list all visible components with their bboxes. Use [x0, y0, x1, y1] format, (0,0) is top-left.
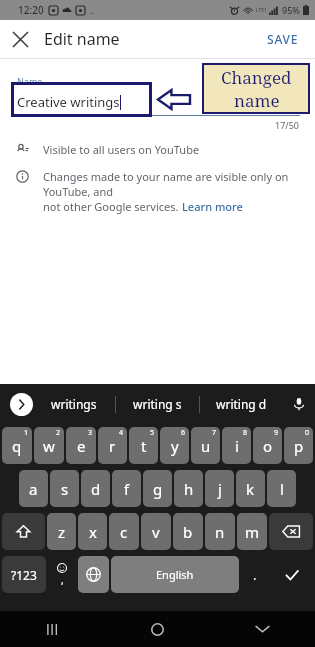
- staticText: 5: [150, 428, 155, 438]
- staticText: b: [183, 522, 193, 542]
- button[interactable]: x: [78, 513, 107, 550]
- staticText: writings: [51, 396, 97, 412]
- staticText: Edit name: [44, 28, 120, 50]
- staticText: j: [218, 479, 222, 499]
- button[interactable]: o: [253, 427, 282, 464]
- button[interactable]: Learn more: [182, 199, 243, 214]
- button[interactable]: m: [237, 513, 267, 550]
- button[interactable]: writing d: [200, 384, 283, 424]
- staticText: writing d: [216, 396, 267, 412]
- staticText: p: [294, 436, 304, 456]
- button[interactable]: w: [34, 427, 64, 464]
- button[interactable]: ?123: [2, 556, 46, 593]
- button[interactable]: Shift: [2, 513, 45, 550]
- button[interactable]: y: [160, 427, 189, 464]
- staticText: 0: [305, 428, 310, 438]
- staticText: 17/50: [0, 119, 299, 131]
- button[interactable]: More suggestions: [10, 393, 33, 416]
- button[interactable]: Creative writings: [0, 91, 315, 113]
- button[interactable]: l: [267, 470, 296, 507]
- button[interactable]: Recent apps: [0, 611, 105, 647]
- staticText: ,: [61, 573, 64, 587]
- staticText: f: [124, 479, 130, 499]
- staticText: 2: [56, 428, 61, 438]
- button[interactable]: Voice input: [283, 384, 315, 424]
- button[interactable]: j: [205, 470, 234, 507]
- staticText: 95%: [282, 4, 300, 16]
- button[interactable]: Hide keyboard: [210, 611, 315, 647]
- staticText: y: [171, 436, 179, 456]
- button[interactable]: writings: [33, 384, 115, 424]
- button[interactable]: Change language: [78, 556, 109, 593]
- staticText: 7: [212, 428, 217, 438]
- staticText: s: [61, 479, 69, 499]
- staticText: Creative writings: [17, 93, 120, 111]
- staticText: c: [120, 522, 128, 542]
- button[interactable]: b: [173, 513, 203, 550]
- staticText: o: [263, 436, 273, 456]
- staticText: z: [58, 522, 66, 542]
- staticText: m: [245, 522, 260, 542]
- staticText: English: [156, 567, 194, 582]
- button[interactable]: c: [109, 513, 139, 550]
- staticText: SAVE: [267, 31, 299, 47]
- staticText: .: [253, 566, 257, 584]
- staticText: d: [91, 479, 101, 499]
- button[interactable]: t: [129, 427, 158, 464]
- button[interactable]: d: [81, 470, 110, 507]
- button[interactable]: r: [98, 427, 127, 464]
- button[interactable]: g: [143, 470, 172, 507]
- button[interactable]: z: [47, 513, 76, 550]
- button[interactable]: .: [241, 556, 269, 593]
- button[interactable]: SAVE: [251, 23, 315, 55]
- staticText: i: [235, 436, 239, 456]
- button[interactable]: Emoji: [48, 556, 76, 593]
- button[interactable]: writing s: [116, 384, 199, 424]
- staticText: LTE1: [256, 7, 267, 14]
- button[interactable]: u: [191, 427, 220, 464]
- staticText: 4: [119, 428, 124, 438]
- button[interactable]: q: [2, 427, 32, 464]
- staticText: q: [12, 436, 22, 456]
- staticText: 9: [274, 428, 279, 438]
- staticText: 12:20: [18, 3, 44, 17]
- staticText: 8: [243, 428, 248, 438]
- staticText: name: [234, 89, 280, 112]
- button[interactable]: Backspace: [269, 513, 313, 550]
- staticText: writing s: [133, 396, 182, 412]
- staticText: ..: [90, 4, 95, 16]
- button[interactable]: Enter: [271, 556, 313, 593]
- button[interactable]: Close: [0, 20, 40, 58]
- button[interactable]: Home: [105, 611, 210, 647]
- staticText: v: [152, 522, 160, 542]
- button[interactable]: s: [50, 470, 79, 507]
- button[interactable]: a: [19, 470, 48, 507]
- staticText: h: [184, 479, 194, 499]
- staticText: Learn more: [182, 199, 243, 214]
- button[interactable]: Visible to all users on YouTube: [0, 142, 315, 157]
- button[interactable]: k: [236, 470, 265, 507]
- staticText: t: [141, 436, 147, 456]
- staticText: Changed: [221, 66, 292, 89]
- staticText: Name: [17, 75, 43, 87]
- staticText: u: [201, 436, 211, 456]
- staticText: 6: [181, 428, 186, 438]
- button[interactable]: n: [205, 513, 235, 550]
- button[interactable]: English: [111, 556, 239, 593]
- staticText: n: [215, 522, 225, 542]
- button[interactable]: i: [222, 427, 251, 464]
- staticText: Visible to all users on YouTube: [43, 142, 200, 157]
- staticText: e: [77, 436, 86, 456]
- button[interactable]: p: [284, 427, 313, 464]
- staticText: l: [280, 479, 284, 499]
- staticText: a: [29, 479, 38, 499]
- button[interactable]: e: [66, 427, 96, 464]
- staticText: x: [89, 522, 97, 542]
- staticText: Changes made to your name are visible on…: [43, 169, 299, 199]
- staticText: 1: [24, 428, 29, 438]
- staticText: 3: [88, 428, 93, 438]
- button[interactable]: h: [174, 470, 203, 507]
- staticText: r: [109, 436, 116, 456]
- button[interactable]: v: [141, 513, 171, 550]
- button[interactable]: f: [112, 470, 141, 507]
